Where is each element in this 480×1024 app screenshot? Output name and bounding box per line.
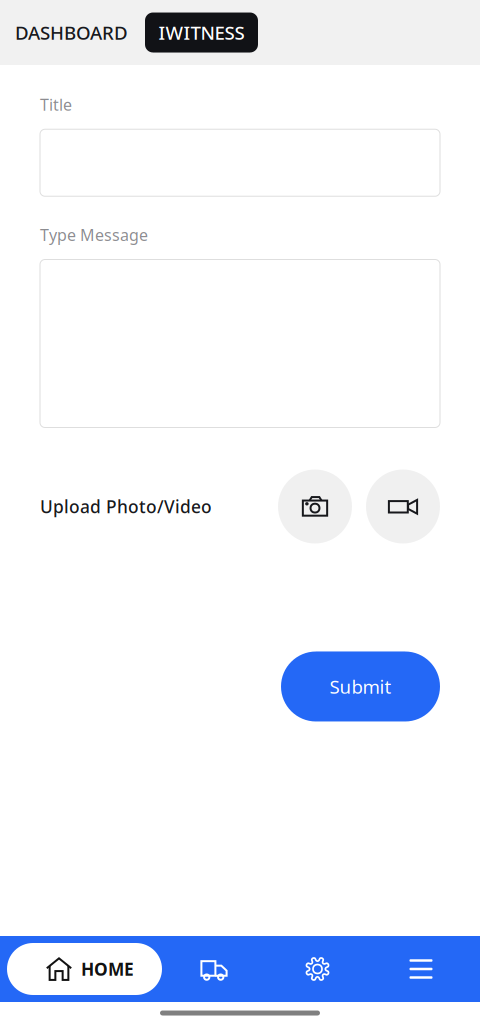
button[interactable]: Upload Video (366, 469, 440, 543)
staticText: IWITNESS (158, 20, 244, 45)
button[interactable]: DASHBOARD (0, 8, 145, 57)
button[interactable]: IWITNESS (145, 12, 258, 52)
staticText: HOME (81, 957, 134, 980)
staticText: Title (40, 94, 72, 115)
button[interactable]: Settings (266, 936, 369, 1002)
staticText: Submit (329, 674, 391, 699)
button[interactable]: Upload Photo (278, 469, 352, 543)
button[interactable]: HOME (7, 943, 162, 995)
button[interactable]: Submit (281, 651, 440, 721)
staticText: Upload Photo/Video (40, 495, 212, 518)
button[interactable]: Deliveries (162, 936, 266, 1002)
staticText: DASHBOARD (15, 20, 128, 45)
staticText: Type Message (40, 224, 148, 245)
button[interactable]: Menu (369, 936, 473, 1002)
